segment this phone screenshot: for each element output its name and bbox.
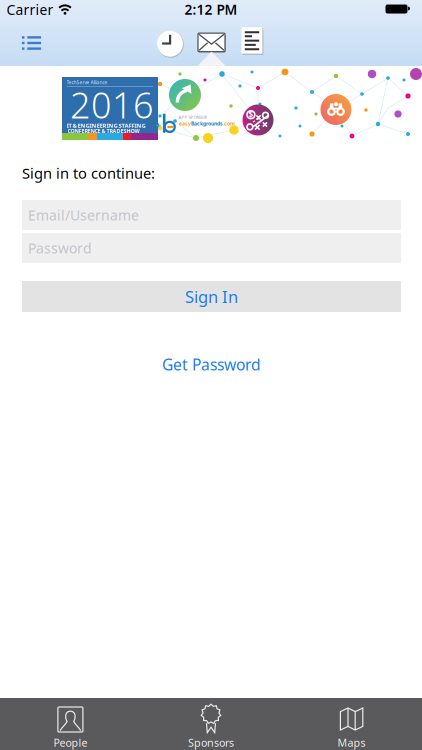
staticText: .com: [223, 120, 235, 127]
staticText: Sign In: [185, 285, 238, 307]
staticText: Password: [28, 239, 92, 257]
staticText: 2:12 PM: [184, 0, 237, 19]
staticText: People: [53, 735, 87, 750]
staticText: Email/Username: [28, 206, 139, 224]
button[interactable]: Sign In: [22, 281, 401, 312]
button[interactable]: Documents: [241, 27, 262, 54]
staticText: Sign in to continue:: [22, 163, 155, 183]
staticText: 2016: [70, 81, 154, 128]
staticText: $: [248, 109, 253, 120]
button[interactable]: Menu: [22, 36, 41, 50]
staticText: Carrier: [6, 0, 53, 19]
staticText: Sponsors: [188, 735, 234, 750]
staticText: TechServe Alliance: [66, 79, 107, 86]
button[interactable]: Maps: [281, 698, 422, 750]
staticText: IT & ENGINEERING STAFFING: [66, 122, 145, 129]
button[interactable]: TechServe Alliance 2016 Conference adver…: [0, 66, 422, 145]
button[interactable]: Recent: [156, 30, 183, 57]
button[interactable]: Messages: [198, 33, 225, 52]
staticText: Maps: [338, 735, 366, 750]
staticText: Backgrounds: [191, 120, 223, 127]
staticText: Get Password: [162, 354, 261, 375]
staticText: APP SPONSOR: [178, 114, 207, 120]
button[interactable]: Sponsors: [141, 698, 281, 750]
button[interactable]: Get Password: [162, 354, 261, 375]
button[interactable]: People: [0, 698, 141, 750]
staticText: CONFERENCE & TRADESHOW: [67, 127, 139, 134]
staticText: easy: [179, 120, 191, 127]
